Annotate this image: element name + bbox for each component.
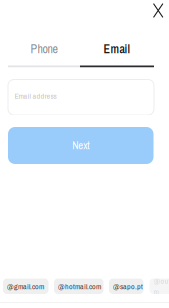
- button[interactable]: @hotmail.com: [54, 278, 103, 294]
- button[interactable]: Email address: [8, 79, 154, 115]
- staticText: Phone: [30, 41, 57, 57]
- button[interactable]: Email: [80, 42, 154, 67]
- staticText: @gmail.com: [7, 281, 44, 292]
- button[interactable]: Phone: [8, 42, 80, 67]
- staticText: @outlook.com: [153, 275, 169, 297]
- staticText: @hotmail.com: [58, 281, 101, 292]
- staticText: @sapo.pt: [113, 281, 143, 292]
- button[interactable]: Close: [147, 0, 169, 21]
- staticText: Next: [72, 138, 89, 153]
- button[interactable]: @outlook.com: [149, 278, 169, 294]
- staticText: Email: [103, 41, 130, 57]
- button[interactable]: @sapo.pt: [109, 278, 143, 294]
- staticText: Email address: [14, 90, 56, 101]
- button[interactable]: Next: [8, 127, 153, 164]
- button[interactable]: @gmail.com: [3, 278, 48, 294]
